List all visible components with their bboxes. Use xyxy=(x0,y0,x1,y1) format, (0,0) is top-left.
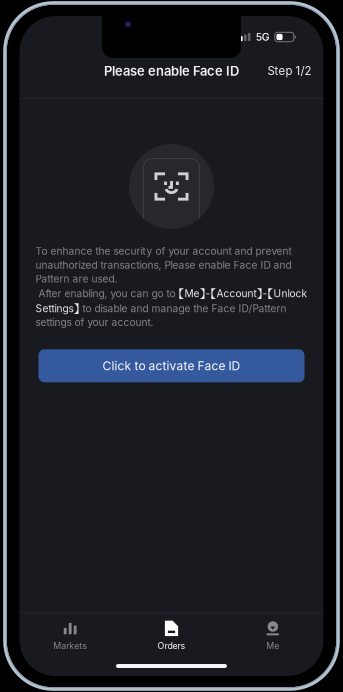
staticText: Click to activate Face ID xyxy=(102,358,240,373)
staticText: Please enable Face ID xyxy=(104,63,239,79)
button[interactable]: Orders xyxy=(121,612,222,656)
button[interactable]: Me xyxy=(222,612,323,656)
staticText: Me xyxy=(266,640,279,651)
staticText: Step 1/2 xyxy=(267,64,311,78)
staticText: Markets xyxy=(53,640,87,651)
staticText: Orders xyxy=(157,640,185,651)
staticText: After enabling, you can go to 【Me】-【Acco… xyxy=(35,286,307,328)
button[interactable]: Step 1/2 xyxy=(257,56,323,86)
staticText: 5G xyxy=(256,31,270,43)
button[interactable]: Markets xyxy=(19,612,121,656)
staticText: To enhance the security of your account … xyxy=(35,245,291,285)
button[interactable]: Click to activate Face ID xyxy=(38,349,304,382)
